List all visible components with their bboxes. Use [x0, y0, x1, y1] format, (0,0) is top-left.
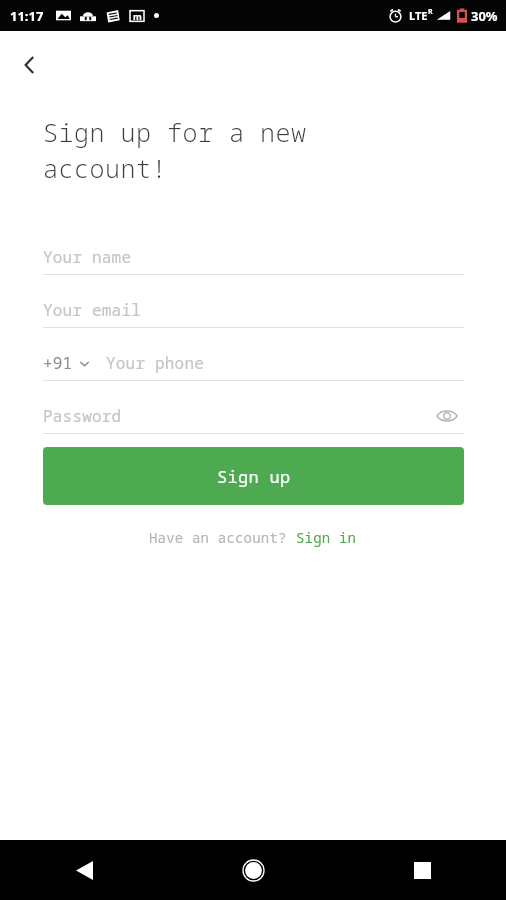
button[interactable]: Back [6, 41, 54, 89]
staticText: Sign in [296, 528, 357, 547]
staticText: LTE [409, 8, 428, 23]
button[interactable]: Your email [43, 293, 464, 328]
staticText: Your name [43, 246, 132, 268]
button[interactable]: Back [61, 847, 107, 893]
staticText: Your phone [106, 352, 205, 374]
staticText: 30% [471, 7, 498, 25]
staticText: R [428, 7, 433, 17]
button[interactable]: Have an account? [149, 528, 357, 547]
staticText: +91 [43, 352, 73, 374]
button[interactable]: Password [43, 399, 430, 433]
button[interactable]: Home [230, 847, 276, 893]
staticText: Password [43, 405, 122, 427]
staticText: Sign up for a new [43, 115, 307, 149]
staticText: Have an account? [149, 528, 296, 547]
button[interactable]: Recent apps [399, 847, 445, 893]
staticText: m [133, 10, 142, 22]
button[interactable]: Show password [430, 399, 464, 433]
button[interactable]: Your name [43, 240, 464, 275]
staticText: Your email [43, 299, 142, 321]
button[interactable]: Sign up [43, 447, 464, 505]
button[interactable]: Your phone [106, 346, 464, 380]
staticText: 11:17 [10, 7, 44, 25]
staticText: account! [43, 151, 168, 185]
button[interactable]: Select country code [43, 352, 90, 374]
staticText: Sign up [217, 465, 291, 488]
